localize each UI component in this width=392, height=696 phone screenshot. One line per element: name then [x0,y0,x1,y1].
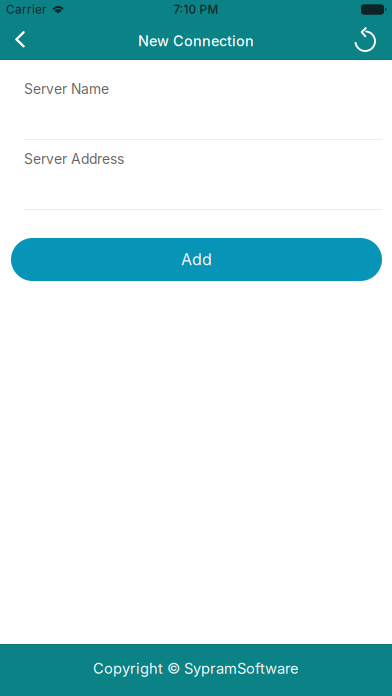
button[interactable]: Server Address [0,140,392,210]
staticText: Add [181,250,212,269]
staticText: Copyright © SypramSoftware [93,660,299,677]
button[interactable]: Server Name [0,60,392,140]
staticText: New Connection [138,32,254,50]
button[interactable]: Add [11,238,382,281]
staticText: Server Address [24,151,124,167]
staticText: Carrier [6,2,46,17]
button[interactable]: Refresh [345,19,385,59]
button[interactable]: Back [0,19,40,59]
staticText: Server Name [24,81,109,97]
staticText: 7:10 PM [173,2,218,17]
